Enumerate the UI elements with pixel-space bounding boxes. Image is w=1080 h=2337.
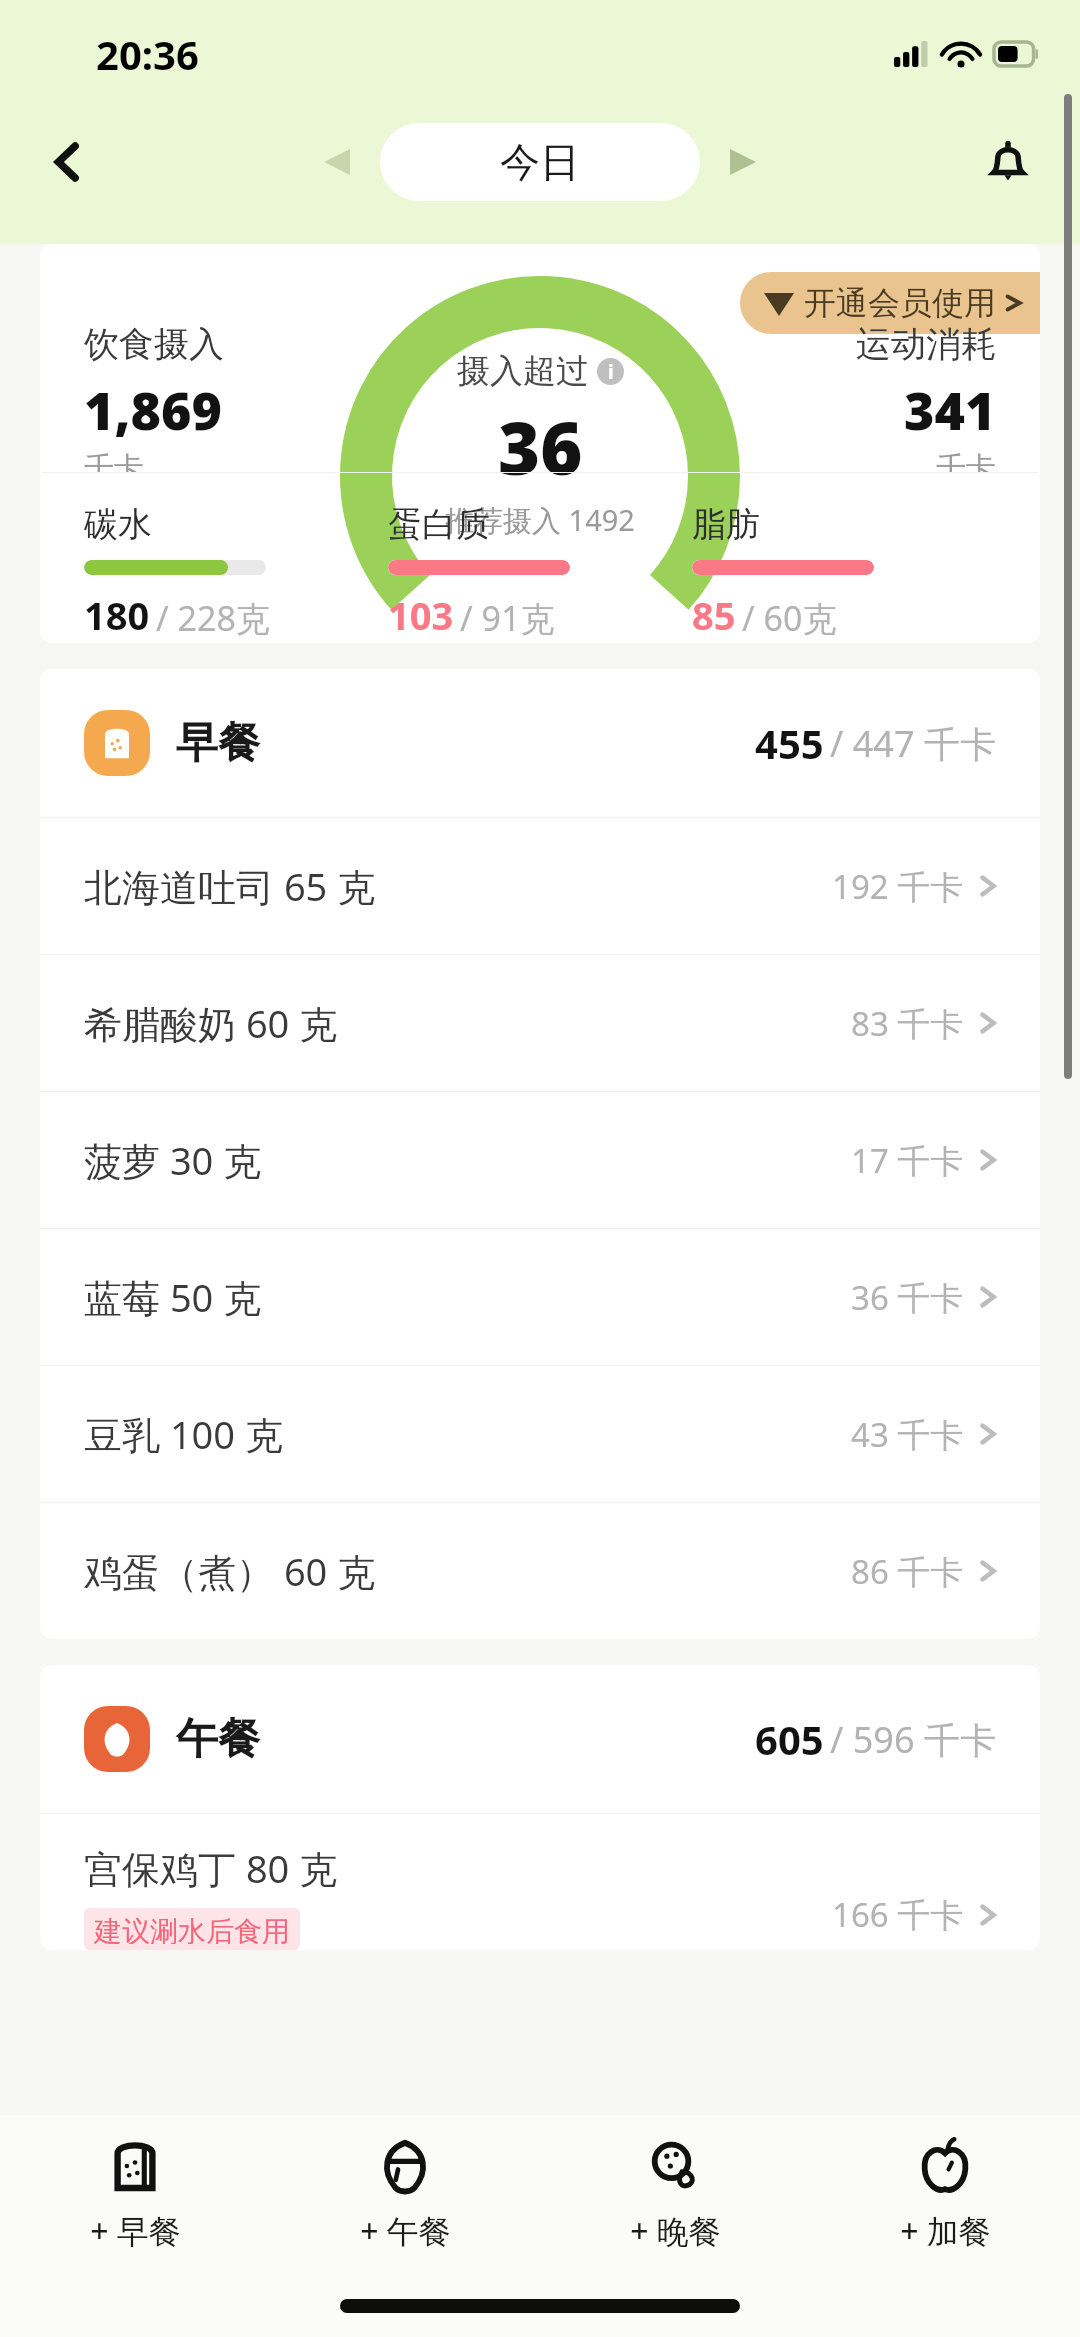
- button[interactable]: 北海道吐司 65 克: [40, 818, 1040, 954]
- button[interactable]: 希腊酸奶 60 克: [40, 955, 1040, 1091]
- button[interactable]: 今日: [380, 123, 700, 201]
- staticText: 千卡: [84, 449, 144, 472]
- staticText: / 447 千卡: [830, 719, 996, 768]
- staticText: 摄入超过: [457, 350, 589, 392]
- staticText: + 加餐: [900, 2209, 991, 2253]
- staticText: 103: [388, 589, 454, 641]
- staticText: 希腊酸奶 60 克: [84, 997, 338, 1049]
- button[interactable]: 蓝莓 50 克: [40, 1229, 1040, 1365]
- staticText: i: [608, 359, 614, 385]
- button[interactable]: 通知: [966, 120, 1050, 204]
- button[interactable]: 开通会员使用: [740, 272, 1040, 334]
- staticText: 脂肪: [692, 503, 760, 546]
- staticText: 开通会员使用: [804, 283, 996, 323]
- button[interactable]: 早餐: [40, 669, 1040, 817]
- staticText: 早餐: [176, 717, 260, 770]
- button[interactable]: + 早餐: [0, 2115, 270, 2275]
- staticText: 455: [755, 716, 824, 770]
- staticText: 今日: [500, 137, 580, 187]
- button[interactable]: 鸡蛋（煮） 60 克: [40, 1503, 1040, 1639]
- staticText: 36: [498, 398, 583, 496]
- staticText: 碳水: [84, 503, 152, 546]
- staticText: 20:36: [96, 27, 199, 81]
- staticText: / 228克: [156, 595, 270, 641]
- staticText: 180: [84, 589, 150, 641]
- staticText: 蛋白质: [388, 503, 490, 546]
- button[interactable]: + 午餐: [270, 2115, 540, 2275]
- staticText: 83 千卡: [851, 1001, 964, 1046]
- button[interactable]: 豆乳 100 克: [40, 1366, 1040, 1502]
- staticText: 北海道吐司 65 克: [84, 860, 376, 912]
- staticText: 43 千卡: [851, 1412, 964, 1457]
- staticText: 36 千卡: [851, 1275, 964, 1320]
- button[interactable]: 后一天: [708, 127, 778, 197]
- staticText: 341: [904, 374, 996, 445]
- button[interactable]: + 加餐: [810, 2115, 1080, 2275]
- staticText: 166 千卡: [832, 1892, 964, 1937]
- staticText: + 早餐: [90, 2209, 181, 2253]
- button[interactable]: 午餐: [40, 1665, 1040, 1813]
- staticText: / 596 千卡: [830, 1715, 996, 1764]
- staticText: 1,869: [84, 374, 222, 445]
- staticText: 豆乳 100 克: [84, 1408, 283, 1460]
- staticText: + 午餐: [360, 2209, 451, 2253]
- staticText: 86 千卡: [851, 1549, 964, 1594]
- staticText: 宫保鸡丁 80 克: [84, 1842, 338, 1894]
- staticText: 85: [692, 589, 736, 641]
- staticText: 饮食摄入: [84, 322, 224, 366]
- staticText: 推荐摄入 1492: [445, 500, 635, 540]
- staticText: 17 千卡: [851, 1138, 964, 1183]
- staticText: 192 千卡: [832, 864, 964, 909]
- staticText: 建议涮水后食用: [94, 1914, 290, 1944]
- staticText: / 60克: [742, 595, 837, 641]
- staticText: 鸡蛋（煮） 60 克: [84, 1545, 376, 1597]
- button[interactable]: 返回: [26, 120, 110, 204]
- staticText: 运动消耗: [856, 322, 996, 366]
- staticText: 千卡: [936, 449, 996, 472]
- button[interactable]: 前一天: [302, 127, 372, 197]
- staticText: + 晚餐: [630, 2209, 721, 2253]
- button[interactable]: 宫保鸡丁 80 克: [40, 1814, 1040, 1950]
- staticText: / 91克: [460, 595, 555, 641]
- button[interactable]: 菠萝 30 克: [40, 1092, 1040, 1228]
- staticText: 菠萝 30 克: [84, 1134, 262, 1186]
- button[interactable]: + 晚餐: [540, 2115, 810, 2275]
- staticText: 蓝莓 50 克: [84, 1271, 262, 1323]
- staticText: 605: [755, 1712, 824, 1766]
- staticText: 午餐: [176, 1713, 260, 1766]
